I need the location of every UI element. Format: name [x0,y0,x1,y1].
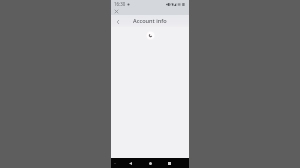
button[interactable]: Close [113,8,120,15]
staticText: Account info [133,17,167,25]
button[interactable]: Hide keyboard [112,160,118,166]
staticText: 16:30 [114,1,126,7]
button[interactable]: Recent apps [165,159,173,167]
button[interactable]: Navigate up [113,17,122,26]
button[interactable]: Back [126,159,134,167]
button[interactable]: Home [146,159,154,167]
